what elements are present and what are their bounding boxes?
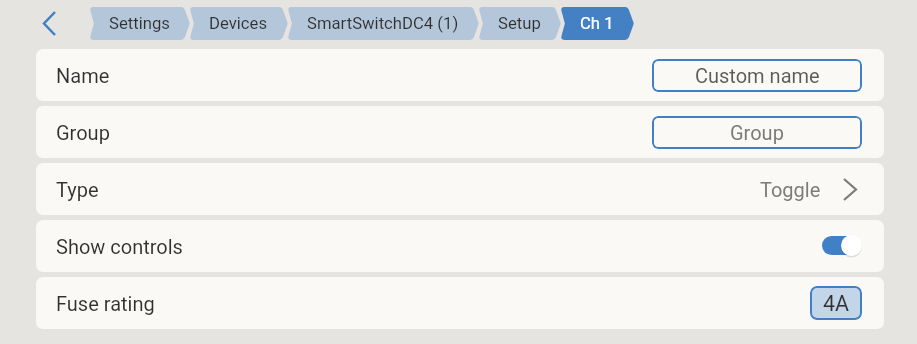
button[interactable]: Custom name bbox=[652, 59, 862, 92]
button[interactable]: Fuse rating bbox=[36, 277, 884, 329]
staticText: Show controls bbox=[56, 235, 183, 258]
button[interactable]: Name bbox=[36, 49, 884, 101]
staticText: Ch 1 bbox=[580, 14, 614, 34]
staticText: Group bbox=[730, 121, 784, 144]
button[interactable]: SmartSwitchDC4 (1) bbox=[287, 7, 479, 40]
staticText: Name bbox=[56, 64, 110, 87]
button[interactable]: Group bbox=[36, 106, 884, 158]
staticText: Settings bbox=[109, 14, 170, 34]
button[interactable]: Group bbox=[652, 116, 862, 149]
staticText: Group bbox=[56, 121, 110, 144]
button[interactable]: Back bbox=[33, 3, 65, 43]
button[interactable]: Settings bbox=[89, 7, 190, 40]
button[interactable]: Type bbox=[36, 163, 884, 215]
button[interactable]: Show controls toggle bbox=[822, 235, 862, 257]
staticText: Devices bbox=[209, 14, 268, 34]
staticText: Setup bbox=[498, 14, 541, 34]
button[interactable]: Ch 1 bbox=[560, 7, 634, 40]
button[interactable]: Setup bbox=[478, 7, 561, 40]
staticText: Custom name bbox=[695, 64, 820, 87]
staticText: SmartSwitchDC4 (1) bbox=[307, 14, 459, 34]
button[interactable]: Show controls bbox=[36, 220, 884, 272]
button[interactable]: Devices bbox=[189, 7, 288, 40]
staticText: Type bbox=[56, 178, 99, 201]
button[interactable]: 4A bbox=[810, 286, 862, 320]
staticText: 4A bbox=[823, 291, 850, 316]
staticText: Fuse rating bbox=[56, 292, 155, 315]
staticText: Toggle bbox=[760, 178, 821, 201]
